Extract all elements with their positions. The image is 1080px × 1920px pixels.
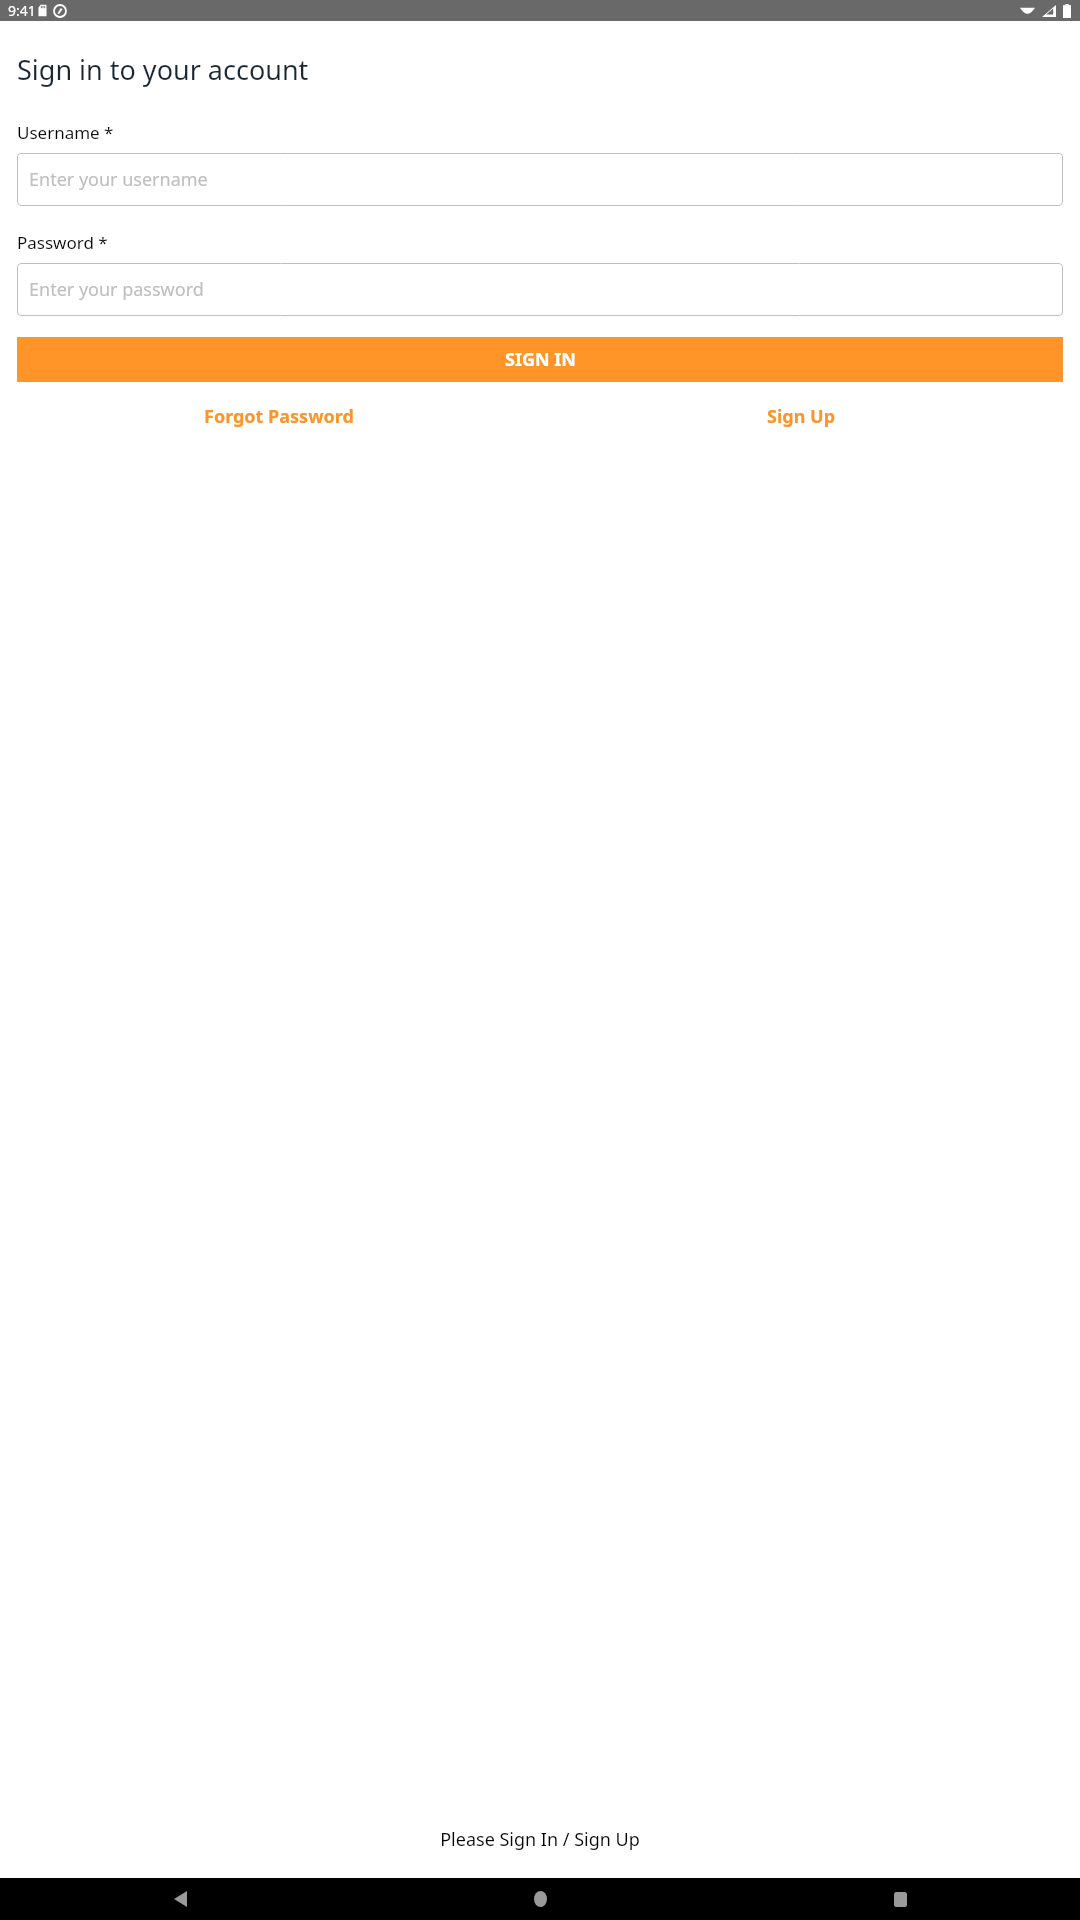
- staticText: Sign in to your account: [17, 51, 309, 88]
- button[interactable]: Recent apps: [720, 1878, 1080, 1920]
- staticText: Enter your username: [29, 167, 208, 192]
- staticText: Please Sign In / Sign Up: [0, 1827, 1080, 1852]
- button[interactable]: Back: [0, 1878, 360, 1920]
- button[interactable]: Forgot Password: [17, 404, 540, 429]
- staticText: Forgot Password: [204, 404, 354, 429]
- button[interactable]: Enter your username: [17, 153, 1063, 206]
- staticText: SIGN IN: [505, 347, 576, 372]
- button[interactable]: Enter your password: [17, 263, 1063, 316]
- staticText: Password *: [17, 231, 108, 254]
- staticText: Username *: [17, 121, 114, 144]
- staticText: 9:41: [8, 1, 36, 20]
- button[interactable]: Sign Up: [540, 404, 1063, 429]
- staticText: Enter your password: [29, 277, 204, 302]
- staticText: Sign Up: [767, 404, 836, 429]
- button[interactable]: SIGN IN: [17, 337, 1063, 382]
- button[interactable]: Home: [360, 1878, 720, 1920]
